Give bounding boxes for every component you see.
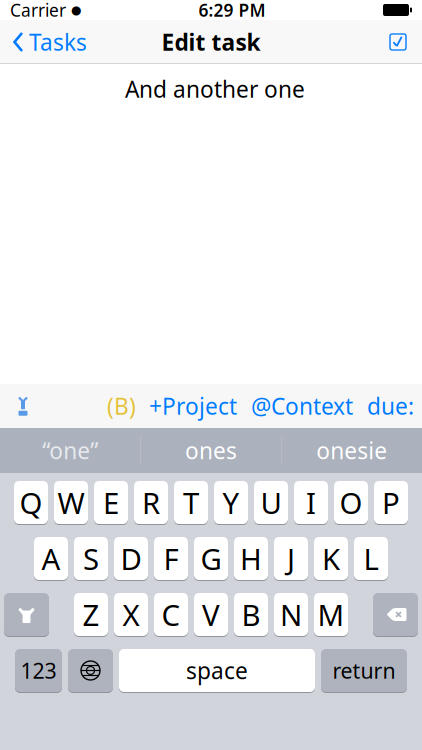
button[interactable]: 123 bbox=[15, 648, 62, 693]
button[interactable]: J bbox=[274, 536, 308, 581]
staticText: L bbox=[363, 539, 378, 578]
button[interactable]: space bbox=[119, 648, 315, 693]
button[interactable]: B bbox=[234, 592, 268, 637]
staticText: C bbox=[161, 595, 180, 634]
staticText: M bbox=[317, 595, 344, 634]
button[interactable]: R bbox=[134, 480, 168, 525]
button[interactable]: X bbox=[114, 592, 148, 637]
staticText: Z bbox=[82, 595, 99, 634]
button[interactable]: S bbox=[74, 536, 108, 581]
staticText: due: bbox=[367, 391, 414, 421]
staticText: B bbox=[241, 595, 260, 634]
staticText: Carrier bbox=[10, 0, 66, 21]
staticText: O bbox=[339, 483, 362, 522]
button[interactable]: Z bbox=[74, 592, 108, 637]
staticText: R bbox=[142, 483, 160, 522]
staticText: Q bbox=[19, 483, 42, 522]
button[interactable]: U bbox=[254, 480, 288, 525]
button[interactable]: Y bbox=[214, 480, 248, 525]
button[interactable]: W bbox=[54, 480, 88, 525]
button[interactable]: @Context bbox=[244, 384, 360, 428]
staticText: D bbox=[120, 539, 141, 578]
staticText: H bbox=[240, 539, 262, 578]
button[interactable]: F bbox=[154, 536, 188, 581]
staticText: J bbox=[287, 539, 295, 578]
button[interactable]: C bbox=[154, 592, 188, 637]
staticText: Edit task bbox=[161, 27, 260, 57]
button[interactable]: Q bbox=[14, 480, 48, 525]
staticText: X bbox=[122, 595, 139, 634]
staticText: +Project bbox=[149, 391, 237, 421]
button[interactable]: Hide keyboard bbox=[0, 384, 46, 428]
staticText: Tasks bbox=[29, 27, 87, 57]
button[interactable]: onesie bbox=[282, 428, 422, 472]
button[interactable]: P bbox=[374, 480, 408, 525]
button[interactable]: Save task bbox=[374, 20, 422, 64]
button[interactable]: Next keyboard bbox=[68, 648, 113, 693]
staticText: U bbox=[260, 483, 281, 522]
button[interactable]: “one” bbox=[0, 428, 140, 472]
staticText: onesie bbox=[316, 435, 387, 465]
button[interactable]: E bbox=[94, 480, 128, 525]
staticText: V bbox=[202, 595, 220, 634]
button[interactable]: due: bbox=[360, 384, 422, 428]
staticText: N bbox=[280, 595, 302, 634]
button[interactable]: L bbox=[354, 536, 388, 581]
staticText: space bbox=[186, 655, 248, 685]
staticText: return bbox=[332, 656, 395, 685]
button[interactable]: Shift bbox=[4, 592, 49, 637]
staticText: 6:29 PM bbox=[198, 0, 265, 21]
staticText: 123 bbox=[20, 656, 56, 685]
button[interactable]: A bbox=[34, 536, 68, 581]
staticText: F bbox=[163, 539, 178, 578]
button[interactable]: return bbox=[321, 648, 407, 693]
staticText: W bbox=[57, 483, 84, 522]
button[interactable]: N bbox=[274, 592, 308, 637]
button[interactable]: D bbox=[114, 536, 148, 581]
button[interactable]: T bbox=[174, 480, 208, 525]
staticText: G bbox=[200, 539, 221, 578]
button[interactable]: ones bbox=[141, 428, 281, 472]
button[interactable]: (B) bbox=[101, 384, 142, 428]
staticText: T bbox=[183, 483, 199, 522]
staticText: “one” bbox=[42, 435, 98, 465]
button[interactable]: H bbox=[234, 536, 268, 581]
button[interactable]: V bbox=[194, 592, 228, 637]
staticText: Y bbox=[222, 483, 239, 522]
staticText: ● bbox=[71, 3, 81, 17]
staticText: S bbox=[83, 539, 99, 578]
button[interactable]: Delete bbox=[373, 592, 418, 637]
staticText: @Context bbox=[251, 391, 353, 421]
staticText: K bbox=[322, 539, 340, 578]
staticText: I bbox=[306, 483, 316, 522]
button[interactable]: M bbox=[314, 592, 348, 637]
button[interactable]: K bbox=[314, 536, 348, 581]
staticText: P bbox=[382, 483, 400, 522]
button[interactable]: Tasks bbox=[0, 20, 99, 64]
button[interactable]: O bbox=[334, 480, 368, 525]
staticText: A bbox=[41, 539, 60, 578]
staticText: (B) bbox=[107, 391, 136, 421]
button[interactable]: +Project bbox=[142, 384, 244, 428]
staticText: E bbox=[103, 483, 119, 522]
staticText: ones bbox=[185, 435, 237, 465]
button[interactable]: G bbox=[194, 536, 228, 581]
staticText: And another one bbox=[125, 74, 305, 104]
button[interactable]: I bbox=[294, 480, 328, 525]
